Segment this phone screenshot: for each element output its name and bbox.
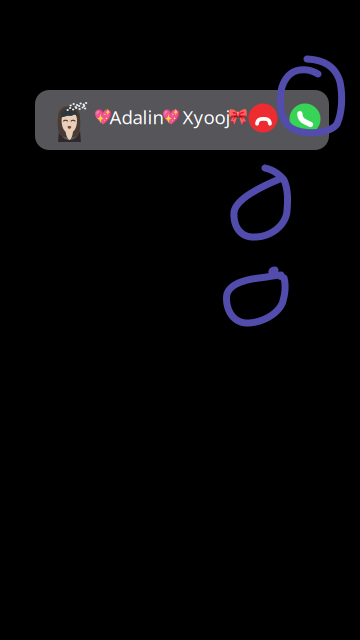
staticText: Xyooj [177, 105, 230, 129]
button[interactable]: Decline call [248, 103, 278, 133]
button[interactable]: Incoming call from Adalin Xyooj [35, 90, 329, 150]
staticText: Adalin [109, 105, 164, 129]
staticText: 💖 [162, 109, 180, 125]
button[interactable]: Accept call [289, 103, 321, 135]
staticText: 💖 [94, 109, 112, 125]
staticText: 🎀 [228, 108, 248, 126]
